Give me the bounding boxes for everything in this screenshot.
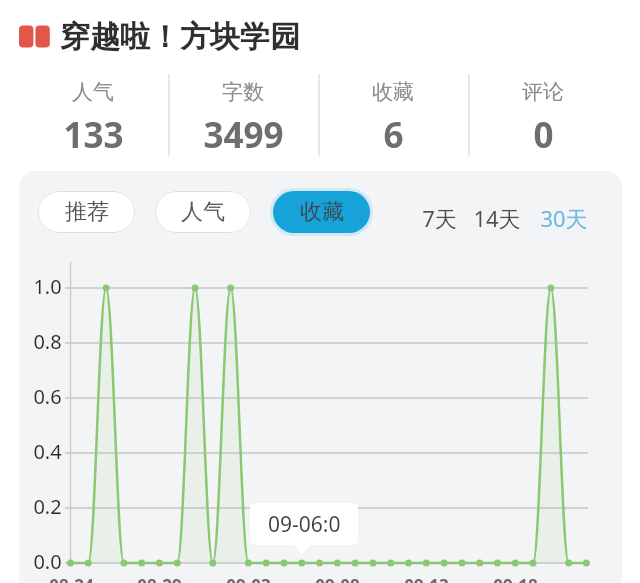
staticText: 0.0: [33, 548, 62, 575]
staticText: 7天: [422, 203, 457, 231]
staticText: 1.0: [33, 273, 62, 300]
staticText: 0.6: [33, 383, 62, 410]
button[interactable]: 14天: [467, 203, 527, 231]
button[interactable]: 人气: [155, 191, 251, 233]
button[interactable]: 7天: [409, 203, 469, 231]
staticText: 08-24: [49, 574, 94, 583]
staticText: 09-13: [404, 574, 449, 583]
staticText: 133: [63, 111, 124, 151]
staticText: 0.4: [33, 438, 62, 465]
staticText: 评论: [522, 79, 564, 105]
button[interactable]: 推荐: [38, 191, 135, 233]
staticText: 0: [533, 111, 554, 151]
staticText: 09-06:0: [268, 510, 341, 539]
staticText: 09-08: [315, 574, 360, 583]
staticText: 08-29: [137, 574, 182, 583]
button[interactable]: 30天: [534, 203, 594, 231]
staticText: 30天: [540, 203, 588, 231]
staticText: 穿越啦！方块学园: [60, 18, 300, 56]
staticText: 3499: [203, 111, 284, 151]
staticText: 字数: [222, 79, 264, 105]
staticText: 人气: [72, 79, 114, 105]
button[interactable]: 收藏: [273, 191, 370, 233]
staticText: 6: [383, 111, 404, 151]
staticText: 09-18: [493, 574, 538, 583]
staticText: 14天: [473, 203, 521, 231]
staticText: 0.8: [33, 328, 62, 355]
staticText: 人气: [181, 198, 225, 226]
staticText: 收藏: [300, 198, 344, 226]
staticText: 09-03: [226, 574, 271, 583]
staticText: 推荐: [65, 198, 109, 226]
staticText: 收藏: [372, 79, 414, 105]
staticText: 0.2: [33, 493, 62, 520]
